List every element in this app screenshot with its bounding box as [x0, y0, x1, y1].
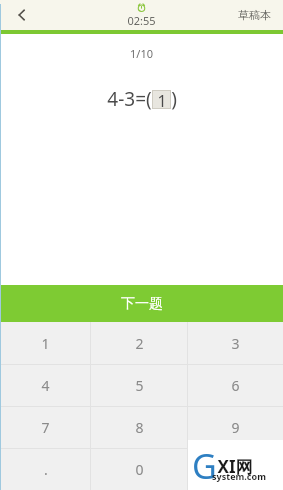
staticText: 0 — [135, 460, 144, 479]
staticText: system.com — [212, 470, 266, 482]
staticText: 1 — [41, 334, 50, 353]
button[interactable] — [188, 449, 283, 490]
staticText: 1/10 — [130, 46, 153, 61]
button[interactable]: 9 — [188, 407, 283, 448]
button[interactable]: 8 — [91, 407, 188, 448]
staticText: 4-3=( — [107, 86, 152, 112]
staticText: XI网 — [217, 455, 253, 478]
staticText: 6 — [231, 376, 240, 395]
button[interactable]: Back — [0, 0, 44, 30]
button[interactable]: 下一题 — [0, 285, 283, 322]
staticText: 3 — [231, 334, 240, 353]
button[interactable]: . — [0, 449, 91, 490]
staticText: 4 — [41, 376, 50, 395]
staticText: 1 — [157, 90, 167, 109]
staticText: 下一题 — [121, 295, 163, 313]
staticText: 9 — [231, 418, 240, 437]
staticText: ) — [171, 86, 177, 112]
button[interactable]: 5 — [91, 365, 188, 406]
staticText: 8 — [135, 418, 144, 437]
button[interactable]: 3 — [188, 322, 283, 364]
button[interactable]: 7 — [0, 407, 91, 448]
staticText: 2 — [135, 334, 144, 353]
staticText: G — [192, 443, 217, 489]
button[interactable]: 2 — [91, 322, 188, 364]
staticText: 02:55 — [127, 13, 156, 28]
button[interactable]: 1 — [152, 90, 171, 109]
staticText: 草稿本 — [238, 8, 271, 22]
button[interactable]: 6 — [188, 365, 283, 406]
button[interactable]: 0 — [91, 449, 188, 490]
button[interactable]: 1 — [0, 322, 91, 364]
button[interactable]: 4 — [0, 365, 91, 406]
staticText: . — [44, 460, 48, 479]
staticText: 5 — [135, 376, 144, 395]
staticText: 7 — [41, 418, 50, 437]
button[interactable]: 草稿本 — [226, 0, 283, 30]
